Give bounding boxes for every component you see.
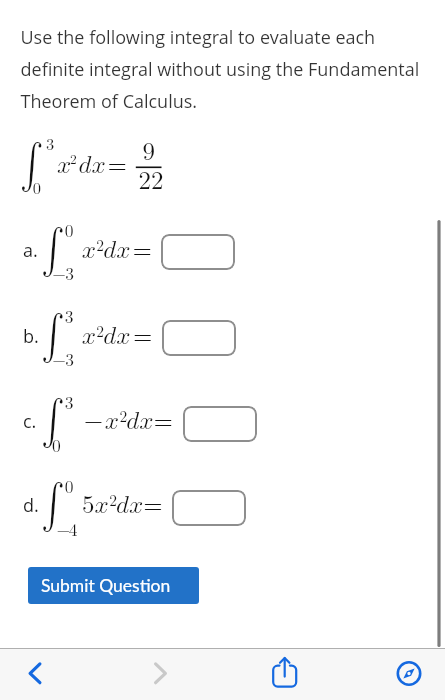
- button[interactable]: [161, 234, 235, 270]
- button[interactable]: [172, 490, 246, 526]
- button[interactable]: [28, 567, 199, 604]
- button[interactable]: [140, 653, 180, 693]
- button[interactable]: [183, 406, 257, 442]
- button[interactable]: [162, 320, 236, 356]
- button[interactable]: [387, 652, 431, 696]
- button[interactable]: [12, 653, 52, 693]
- button[interactable]: [262, 652, 306, 696]
